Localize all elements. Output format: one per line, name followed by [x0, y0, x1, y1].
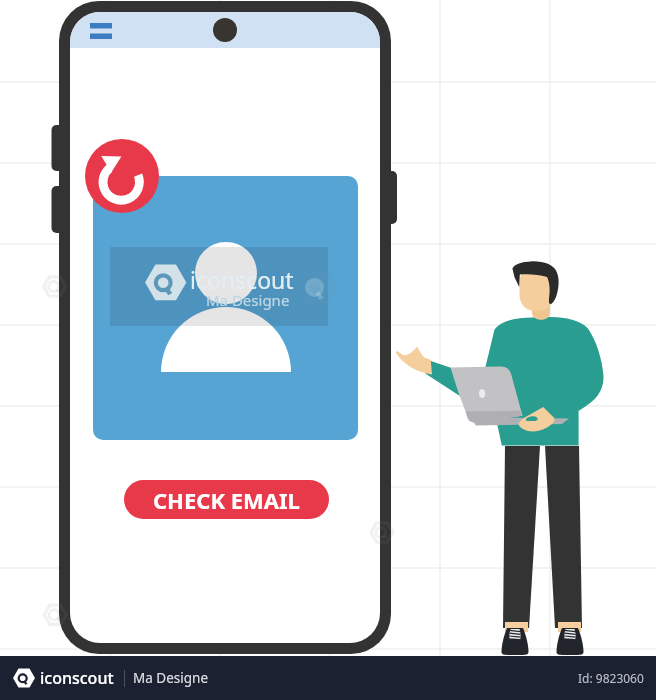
button[interactable]: CHECK EMAIL — [124, 480, 329, 519]
button[interactable]: iconscout — [93, 176, 358, 440]
staticText: iconscout — [40, 667, 114, 689]
staticText: Ma Designe — [133, 669, 209, 687]
button[interactable]: Menu — [90, 23, 112, 39]
staticText: Id: 9823060 — [578, 670, 644, 686]
button[interactable]: Refresh — [85, 139, 159, 213]
staticText: CHECK EMAIL — [153, 485, 300, 515]
staticText: Ma Designe — [206, 290, 290, 310]
staticText: iconscout — [190, 264, 294, 295]
